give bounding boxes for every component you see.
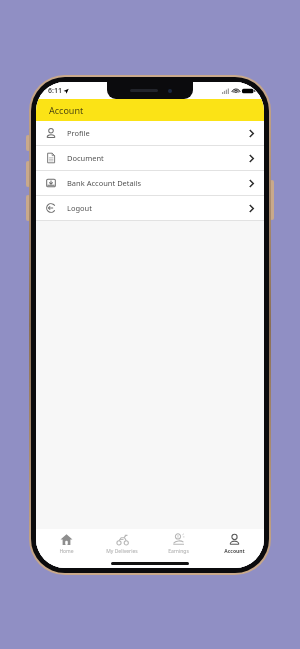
button[interactable]: Home	[40, 529, 92, 559]
button[interactable]: Document	[36, 146, 264, 170]
staticText: Logout	[67, 203, 249, 213]
button[interactable]: Bank Account Details	[36, 171, 264, 195]
button[interactable]: Logout	[36, 196, 264, 220]
staticText: Document	[67, 153, 249, 163]
button[interactable]: Earnings	[152, 529, 204, 559]
button[interactable]: My Deliveries	[96, 529, 148, 559]
button[interactable]: Profile	[36, 121, 264, 145]
button[interactable]: Account	[208, 529, 260, 559]
staticText: Account	[224, 548, 245, 555]
staticText: 6:11	[48, 86, 62, 96]
staticText: Earnings	[168, 548, 189, 555]
staticText: Home	[59, 548, 74, 555]
staticText: Bank Account Details	[67, 178, 249, 188]
staticText: Account	[49, 104, 84, 116]
staticText: Profile	[67, 128, 249, 138]
staticText: My Deliveries	[106, 548, 138, 555]
